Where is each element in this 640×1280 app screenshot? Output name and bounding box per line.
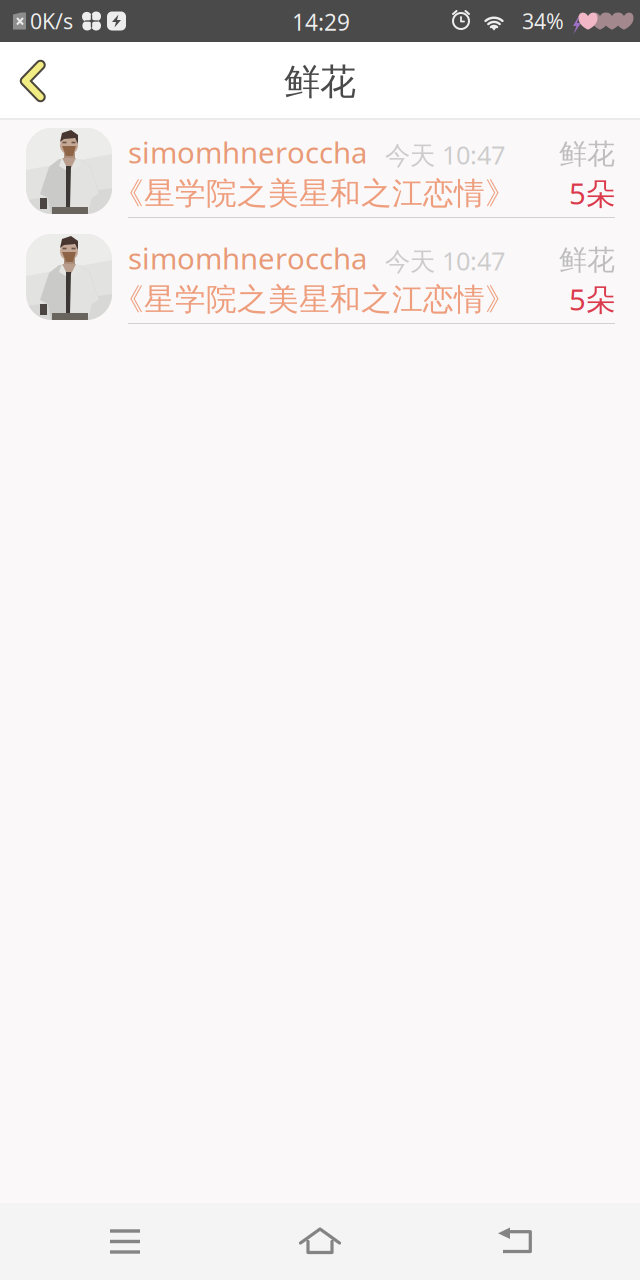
staticText: 鲜花: [559, 137, 615, 171]
staticText: 0K/s: [30, 7, 73, 35]
staticText: 14:29: [292, 7, 350, 37]
staticText: 《星学院之美星和之江恋情》: [113, 175, 516, 212]
staticText: simomhneroccha: [128, 132, 367, 171]
button[interactable]: Home: [223, 1203, 417, 1280]
staticText: simomhneroccha: [128, 238, 367, 277]
button[interactable]: Back: [417, 1203, 613, 1280]
staticText: 5朵: [569, 173, 615, 212]
button[interactable]: simomhneroccha: [0, 120, 640, 226]
staticText: 《星学院之美星和之江恋情》: [113, 281, 516, 318]
button[interactable]: Menu: [27, 1203, 223, 1280]
button[interactable]: Back: [0, 42, 66, 120]
button[interactable]: simomhneroccha: [0, 226, 640, 332]
staticText: 鲜花: [559, 243, 615, 277]
staticText: 34%: [522, 7, 564, 35]
staticText: 鲜花: [284, 60, 356, 104]
staticText: 5朵: [569, 279, 615, 318]
staticText: 今天 10:47: [385, 244, 505, 277]
staticText: 今天 10:47: [385, 138, 505, 171]
